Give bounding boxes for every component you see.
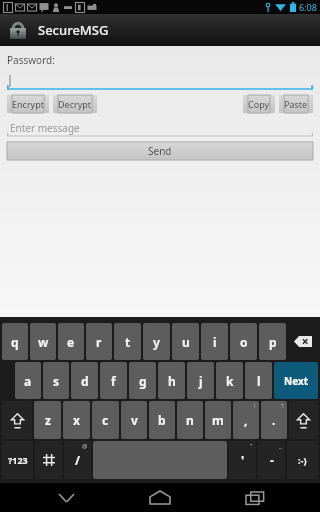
button[interactable]: Home [132,483,188,512]
button[interactable]: m [205,401,231,439]
button[interactable]: Encrypt [7,95,49,113]
staticText: - [270,452,274,468]
button[interactable]: Shift [289,401,318,439]
button[interactable]: j [187,362,214,399]
staticText: p [269,334,277,350]
button[interactable]: " [229,441,256,479]
button[interactable]: _ [258,441,285,479]
staticText: k [226,373,234,389]
staticText: l [257,373,261,389]
staticText: i [213,334,217,350]
staticText: o [240,334,248,350]
button[interactable]: s [43,362,69,399]
staticText: d [81,373,89,389]
button[interactable]: Enter message [7,120,313,137]
staticText: h [168,373,176,389]
button[interactable]: q [2,323,28,360]
staticText: Encrypt [12,98,44,110]
staticText: z [45,412,51,428]
staticText: / [75,452,80,468]
staticText: x [73,412,80,428]
staticText: ?123 [8,454,28,466]
staticText: ' [241,452,245,468]
staticText: SecureMSG [38,21,109,39]
staticText: c [102,412,109,428]
button[interactable]: Shift [2,401,32,439]
staticText: m [212,412,224,428]
staticText: 6:08 [299,1,317,13]
staticText: v [131,412,138,428]
staticText: y [153,334,160,350]
staticText: r [96,334,102,350]
staticText: @ [82,442,88,450]
staticText: " [250,442,253,450]
staticText: Copy [248,98,270,110]
button[interactable]: Send [7,142,313,160]
button[interactable]: u [172,323,199,360]
button[interactable]: Change language [35,441,62,479]
button[interactable]: x [63,401,90,439]
staticText: q [11,334,19,350]
staticText: t [125,334,131,350]
button[interactable]: i [201,323,228,360]
staticText: u [182,334,190,350]
staticText: j [199,373,203,389]
button[interactable]: a [15,362,41,399]
button[interactable]: Decrypt [53,95,97,113]
button[interactable]: Copy [243,95,275,113]
staticText: Password: [7,53,55,67]
button[interactable]: w [30,323,56,360]
staticText: . [272,412,276,428]
button[interactable]: p [259,323,286,360]
button[interactable]: o [230,323,257,360]
staticText: w [38,334,49,350]
button[interactable]: l [245,362,272,399]
button[interactable]: g [129,362,156,399]
staticText: e [67,334,75,350]
button[interactable]: h [158,362,185,399]
button[interactable]: t [114,323,141,360]
button[interactable]: z [34,401,61,439]
button[interactable]: :-) [287,441,318,479]
staticText: ! [254,402,256,410]
staticText: _ [279,442,282,450]
button[interactable]: n [177,401,203,439]
button[interactable]: v [121,401,147,439]
staticText: s [53,373,60,389]
button[interactable]: b [149,401,175,439]
button[interactable]: d [71,362,98,399]
button[interactable]: ! [233,401,259,439]
staticText: n [186,412,194,428]
button[interactable]: Paste [279,95,313,113]
staticText: f [111,373,116,389]
button[interactable]: k [216,362,243,399]
button[interactable]: Hide keyboard [38,483,94,512]
staticText: :-) [298,454,307,466]
button[interactable]: y [143,323,170,360]
button[interactable]: @ [64,441,91,479]
button[interactable]: Next [274,362,318,399]
staticText: Enter message [10,121,80,135]
button[interactable]: f [100,362,127,399]
button[interactable]: e [58,323,84,360]
staticText: Next [284,374,309,388]
button[interactable] [7,73,313,90]
staticText: Send [148,144,172,158]
button[interactable]: ? [261,401,287,439]
button[interactable]: ?123 [2,441,33,479]
button[interactable]: c [92,401,119,439]
staticText: b [158,412,166,428]
button[interactable]: Backspace [288,323,318,360]
staticText: ? [281,402,284,410]
staticText: Paste [284,98,308,110]
button[interactable]: Recent apps [226,483,282,512]
staticText: a [24,373,32,389]
staticText: , [244,412,248,428]
staticText: g [139,373,147,389]
button[interactable]: r [86,323,112,360]
staticText: Decrypt [58,98,92,110]
